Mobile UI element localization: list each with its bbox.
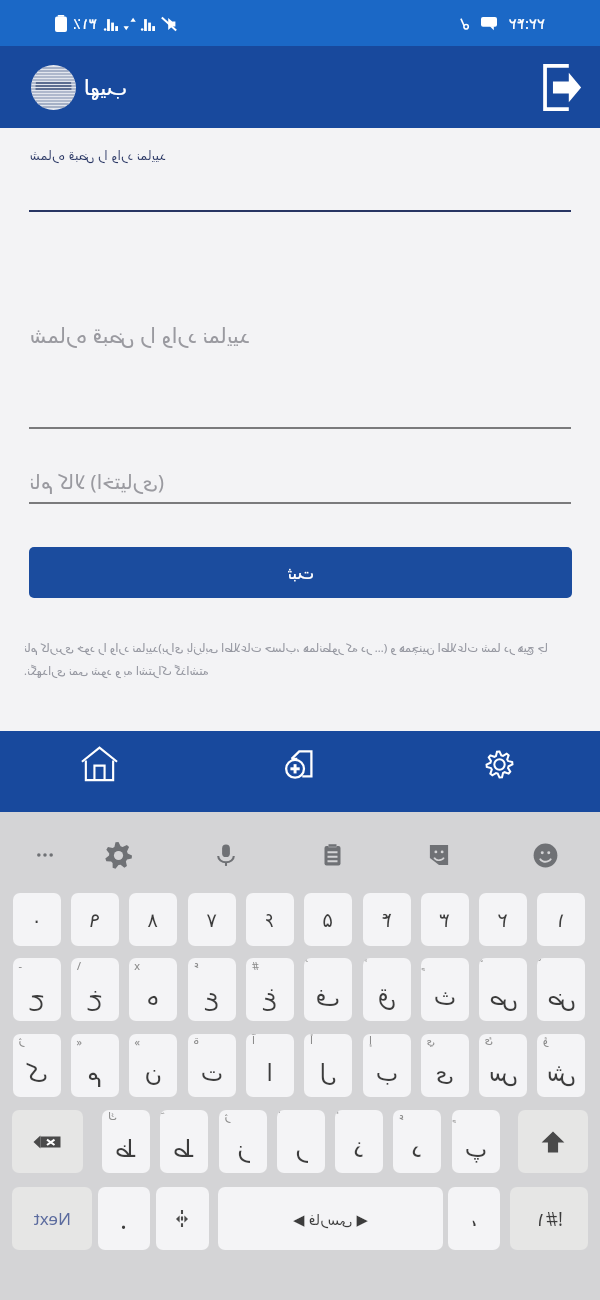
button[interactable]: Add note [200, 731, 400, 812]
staticText: ۳۱٪ [72, 15, 97, 32]
staticText: س [488, 1059, 518, 1087]
staticText: ء [398, 1110, 404, 1123]
button[interactable]: ۷ [188, 893, 236, 946]
button[interactable]: Move cursor [156, 1187, 209, 1250]
button[interactable]: ٌ [479, 958, 527, 1021]
button[interactable]: ٓ [160, 1110, 208, 1173]
button[interactable]: ۴ [363, 893, 411, 946]
button[interactable]: Comma [448, 1187, 500, 1250]
button[interactable]: ً [363, 958, 411, 1021]
button[interactable]: Emoji [520, 829, 572, 881]
button[interactable]: Shift [518, 1110, 588, 1173]
button[interactable]: ؤ [537, 1034, 585, 1097]
button[interactable]: ثبت [29, 547, 572, 598]
staticText: ک [26, 1059, 48, 1087]
button[interactable]: « [71, 1034, 119, 1097]
staticText: ض [546, 983, 576, 1011]
button[interactable]: ۶ [246, 893, 294, 946]
button[interactable]: Next [12, 1187, 92, 1250]
button[interactable]: ۹ [71, 893, 119, 946]
staticText: ة [193, 1034, 199, 1047]
staticText: ء [193, 958, 199, 971]
button[interactable]: ژ [13, 1034, 61, 1097]
button[interactable]: ٔ [335, 1110, 383, 1173]
button[interactable]: # [246, 958, 294, 1021]
staticText: نام کاربری خود را وارد نمایید(برای بازیا… [24, 640, 576, 678]
staticText: ۲ [497, 908, 508, 931]
staticText: ئ [484, 1034, 493, 1047]
staticText: - [18, 958, 22, 973]
button[interactable]: ئ [479, 1034, 527, 1097]
button[interactable]: x [129, 958, 177, 1021]
button[interactable]: Logout [534, 61, 586, 113]
staticText: ۶ [264, 908, 275, 931]
staticText: . [120, 1201, 127, 1236]
button[interactable]: ۳ [421, 893, 469, 946]
staticText: خ [87, 983, 103, 1011]
staticText: ب [375, 1059, 398, 1087]
button[interactable]: Symbols [510, 1187, 588, 1250]
staticText: ۴ [381, 908, 392, 931]
staticText: # [251, 958, 259, 973]
button[interactable]: Settings [400, 731, 600, 812]
staticText: ش [546, 1059, 576, 1087]
button[interactable]: Period [98, 1187, 150, 1250]
button[interactable]: إ [363, 1034, 411, 1097]
button[interactable]: ء [393, 1110, 441, 1173]
staticText: ؤ [542, 1034, 548, 1047]
button[interactable]: ٍ [421, 958, 469, 1021]
button[interactable]: \ [71, 958, 119, 1021]
staticText: لهیب [83, 76, 127, 100]
button[interactable]: Backspace [12, 1110, 83, 1173]
button[interactable]: » [129, 1034, 177, 1097]
staticText: ی [435, 1059, 454, 1087]
button[interactable]: ء [188, 958, 236, 1021]
staticText: ت [200, 1059, 223, 1087]
staticText: ۳ [439, 908, 450, 931]
staticText: ۵ [322, 908, 333, 931]
button[interactable]: أ [304, 1034, 352, 1097]
button[interactable]: ۱ [537, 893, 585, 946]
button[interactable]: Voice input [200, 829, 252, 881]
staticText: ق [377, 983, 396, 1011]
button[interactable]: Clipboard [307, 829, 359, 881]
staticText: ص [488, 983, 518, 1011]
staticText: ه [146, 983, 159, 1011]
staticText: « [76, 1034, 82, 1049]
button[interactable]: ي [421, 1034, 469, 1097]
staticText: ◀ فارسی ▶ [293, 1209, 368, 1229]
button[interactable]: ژ [219, 1110, 267, 1173]
button[interactable]: ٰ [277, 1110, 325, 1173]
button[interactable]: ة [188, 1034, 236, 1097]
staticText: ز [237, 1135, 249, 1163]
staticText: ۷ [206, 908, 217, 931]
button[interactable]: ۰ [13, 893, 61, 946]
staticText: ك [107, 1110, 117, 1123]
button[interactable]: ۸ [129, 893, 177, 946]
staticText: ۱ [555, 908, 566, 931]
button[interactable]: Stickers [413, 829, 465, 881]
button[interactable]: Home [0, 731, 200, 812]
button[interactable]: آ [246, 1034, 294, 1097]
staticText: ۹ [89, 908, 100, 931]
button[interactable]: Keyboard settings [93, 829, 145, 881]
staticText: !#۱ [535, 1206, 563, 1232]
button[interactable]: - [13, 958, 61, 1021]
staticText: ثبت [287, 563, 314, 583]
button[interactable]: ك [102, 1110, 150, 1173]
button[interactable]: ُ [304, 958, 352, 1021]
staticText: ۰ [31, 908, 42, 931]
staticText: \ [76, 958, 81, 973]
staticText: آ [251, 1034, 255, 1047]
button[interactable]: More [19, 829, 71, 881]
staticText: » [134, 1034, 140, 1049]
button[interactable]: ۵ [304, 893, 352, 946]
button[interactable]: ۲ [479, 893, 527, 946]
button[interactable]: ْ [537, 958, 585, 1021]
staticText: نام کالا (اختیاری) [29, 468, 164, 495]
button[interactable]: ٍ [452, 1110, 500, 1173]
staticText: شماره قبض را وارد نمایید [29, 321, 250, 350]
staticText: غ [262, 983, 277, 1011]
staticText: ل [319, 1059, 337, 1087]
button[interactable]: Space [218, 1187, 443, 1250]
